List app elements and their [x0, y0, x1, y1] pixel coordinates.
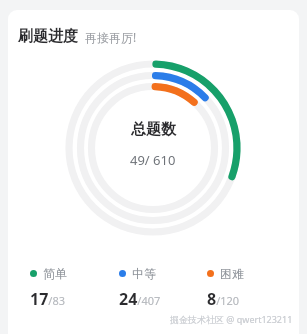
staticText: 简单 [43, 266, 67, 281]
staticText: 再接再厉! [85, 29, 137, 45]
staticText: 24/407 [119, 288, 161, 310]
button[interactable]: 困难 [207, 266, 295, 310]
staticText: 49/ 610 [130, 151, 176, 169]
staticText: 8/120 [207, 288, 240, 310]
button[interactable]: 简单 [30, 266, 119, 310]
button[interactable]: 中等 [119, 266, 207, 310]
staticText: 刷题进度 [18, 27, 78, 46]
staticText: 掘金技术社区 @ qwert123211 [170, 313, 293, 325]
staticText: 总题数 [131, 120, 176, 139]
staticText: 中等 [132, 266, 156, 281]
staticText: 17/83 [30, 288, 65, 310]
button[interactable]: 刷题进度 [18, 27, 137, 46]
staticText: 困难 [220, 266, 244, 281]
button[interactable]: 总题数进度环 [59, 54, 247, 242]
